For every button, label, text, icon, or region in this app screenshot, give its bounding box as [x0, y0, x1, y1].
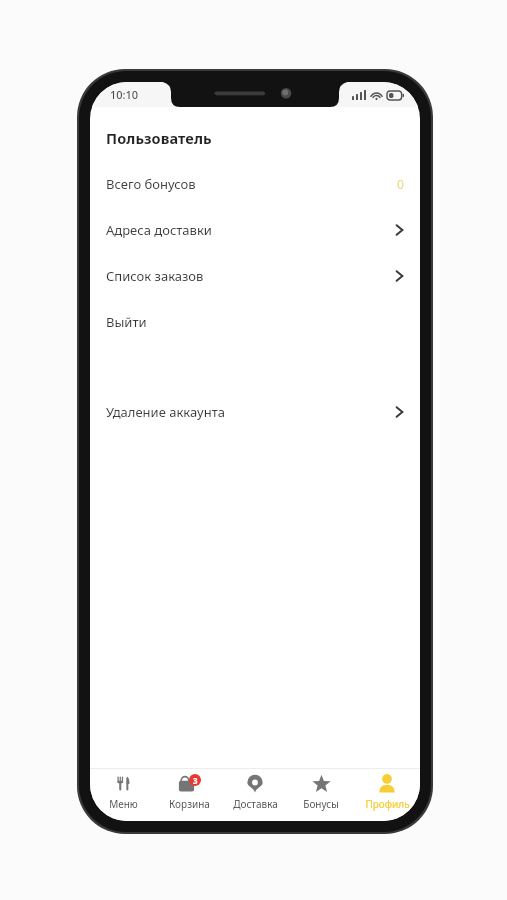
staticText: Пользователь — [106, 128, 212, 148]
button[interactable]: Выйти — [90, 310, 420, 334]
staticText: 0 — [397, 176, 404, 192]
button[interactable]: Профиль — [354, 769, 420, 821]
staticText: Адреса доставки — [106, 221, 395, 239]
button[interactable]: Список заказов — [90, 264, 420, 288]
staticText: 10:10 — [110, 87, 139, 102]
staticText: Доставка — [233, 797, 278, 811]
button[interactable]: Бонусы — [288, 769, 354, 821]
staticText: 3 — [193, 775, 198, 786]
staticText: Меню — [109, 797, 138, 811]
button[interactable]: Меню — [90, 769, 156, 821]
staticText: Профиль — [365, 797, 410, 811]
staticText: Удаление аккаунта — [106, 403, 395, 421]
staticText: Бонусы — [303, 797, 339, 811]
staticText: Выйти — [106, 313, 404, 331]
button[interactable]: Удаление аккаунта — [90, 400, 420, 424]
button[interactable]: Всего бонусов — [90, 172, 420, 196]
button[interactable]: Доставка — [222, 769, 288, 821]
button[interactable]: 3 — [156, 769, 222, 821]
button[interactable]: Адреса доставки — [90, 218, 420, 242]
staticText: Список заказов — [106, 267, 395, 285]
staticText: Корзина — [169, 797, 210, 811]
staticText: Всего бонусов — [106, 175, 397, 193]
